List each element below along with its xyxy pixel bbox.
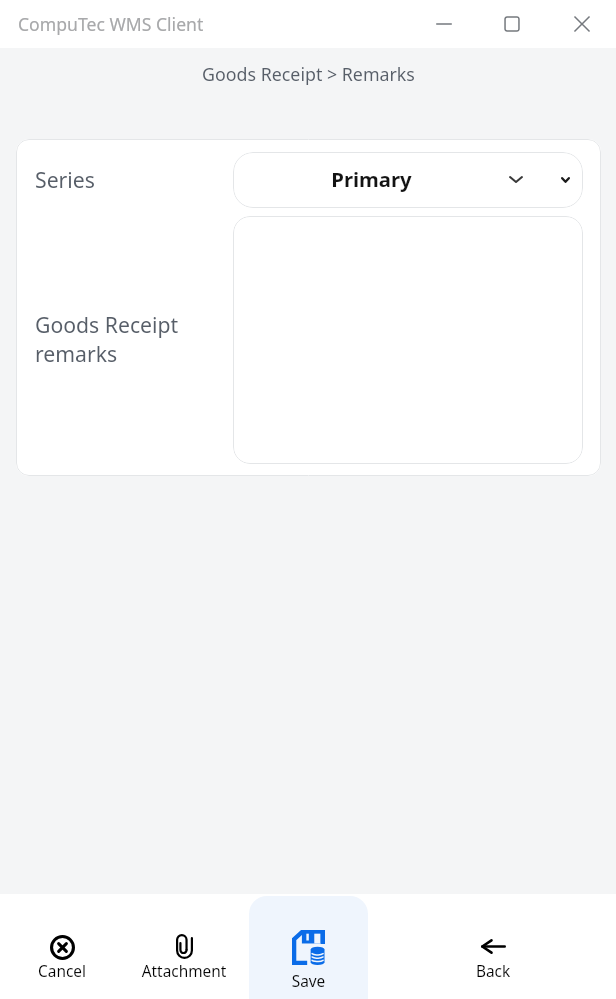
staticText: Series bbox=[35, 165, 95, 194]
staticText: Attachment bbox=[126, 961, 242, 982]
button[interactable]: Back bbox=[435, 894, 551, 999]
staticText: Cancel bbox=[4, 961, 120, 982]
button[interactable]: Cancel bbox=[4, 894, 120, 999]
button[interactable]: Primary bbox=[233, 152, 583, 208]
button[interactable]: Attachment bbox=[126, 894, 242, 999]
button[interactable]: Minimize bbox=[410, 0, 478, 48]
button[interactable]: Close bbox=[546, 0, 616, 48]
button[interactable]: Save bbox=[249, 896, 368, 999]
button[interactable]: Maximize bbox=[478, 0, 546, 48]
button[interactable]: Goods Receipt remarks bbox=[233, 216, 583, 464]
button[interactable]: Show series options bbox=[551, 166, 579, 194]
staticText: Save bbox=[249, 971, 368, 992]
staticText: Back bbox=[435, 961, 551, 982]
staticText: CompuTec WMS Client bbox=[18, 12, 204, 36]
staticText: Primary bbox=[233, 165, 510, 193]
staticText: Goods Receipt > Remarks bbox=[202, 62, 415, 86]
staticText: Goods Receipt remarks bbox=[35, 310, 179, 368]
